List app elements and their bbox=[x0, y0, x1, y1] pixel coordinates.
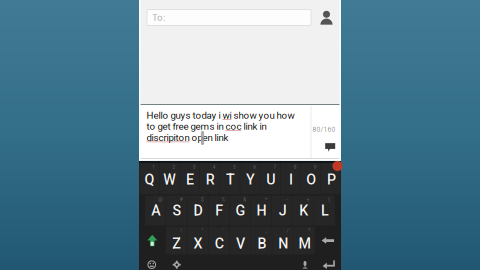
staticText: & bbox=[243, 197, 246, 202]
button[interactable]: Voice input bbox=[294, 256, 316, 270]
staticText: L bbox=[321, 202, 329, 219]
staticText: S bbox=[172, 202, 181, 219]
staticText: J bbox=[279, 202, 287, 219]
staticText: ? bbox=[308, 228, 310, 233]
staticText: ' bbox=[223, 228, 224, 233]
staticText: N bbox=[278, 235, 288, 252]
staticText: D bbox=[194, 202, 203, 219]
staticText: P bbox=[327, 171, 336, 188]
button[interactable]: Delete bbox=[315, 226, 341, 255]
button[interactable]: 7 bbox=[260, 162, 280, 194]
staticText: C bbox=[215, 235, 224, 252]
button[interactable]: 6 bbox=[240, 162, 260, 194]
staticText: Q bbox=[145, 171, 155, 188]
staticText: G bbox=[235, 202, 245, 219]
button[interactable]: ! bbox=[165, 226, 187, 255]
button[interactable]: @ bbox=[145, 195, 166, 226]
button[interactable]: 0 bbox=[321, 162, 341, 194]
button[interactable]: + bbox=[293, 195, 314, 226]
button[interactable]: Send message bbox=[325, 143, 335, 152]
staticText: X bbox=[193, 235, 202, 252]
button[interactable]: 4 bbox=[200, 162, 220, 194]
staticText: A bbox=[151, 202, 160, 219]
staticText: T bbox=[226, 171, 235, 188]
button[interactable]: Emoji bbox=[139, 256, 164, 270]
button[interactable]: To: bbox=[147, 9, 311, 25]
button[interactable]: 9 bbox=[301, 162, 321, 194]
staticText: ( bbox=[328, 197, 330, 202]
staticText: B bbox=[257, 235, 266, 252]
staticText: " bbox=[201, 228, 203, 233]
staticText: U bbox=[266, 171, 275, 188]
staticText: 2 bbox=[172, 164, 175, 170]
button[interactable]: Choose contact bbox=[320, 10, 333, 25]
button[interactable]: 5 bbox=[220, 162, 240, 194]
staticText: - bbox=[286, 197, 287, 202]
staticText: / bbox=[287, 228, 289, 233]
button[interactable]: * bbox=[250, 195, 271, 226]
staticText: M bbox=[299, 235, 311, 252]
staticText: R bbox=[206, 171, 215, 188]
staticText: ; bbox=[266, 228, 267, 233]
staticText: $ bbox=[201, 197, 204, 202]
staticText: 7 bbox=[273, 164, 276, 170]
button[interactable]: ( bbox=[314, 195, 335, 226]
staticText: O bbox=[306, 171, 316, 188]
staticText: to get free gems in coc link in bbox=[146, 121, 266, 132]
staticText: 8 bbox=[294, 164, 297, 170]
staticText: F bbox=[215, 202, 223, 219]
button[interactable]: $ bbox=[187, 195, 208, 226]
button[interactable]: Shift bbox=[139, 226, 165, 255]
button[interactable]: / bbox=[272, 226, 293, 255]
staticText: 3 bbox=[193, 164, 196, 170]
button[interactable]: ' bbox=[208, 226, 229, 255]
staticText: To: bbox=[152, 12, 165, 23]
staticText: ! bbox=[181, 228, 182, 233]
staticText: * bbox=[265, 197, 267, 202]
staticText: 1 bbox=[152, 164, 155, 170]
staticText: Y bbox=[246, 171, 255, 188]
staticText: K bbox=[299, 202, 308, 219]
button[interactable]: Keyboard settings bbox=[164, 256, 189, 270]
staticText: 6 bbox=[253, 164, 256, 170]
staticText: 5 bbox=[233, 164, 236, 170]
button[interactable]: ; bbox=[251, 226, 272, 255]
staticText: 80/160 bbox=[312, 125, 335, 133]
staticText: @ bbox=[158, 197, 162, 202]
staticText: : bbox=[244, 228, 245, 233]
staticText: E bbox=[186, 171, 194, 188]
button[interactable]: # bbox=[166, 195, 187, 226]
button[interactable]: 8 bbox=[280, 162, 301, 194]
button[interactable]: Return bbox=[316, 256, 341, 270]
staticText: I bbox=[289, 171, 293, 188]
staticText: % bbox=[222, 197, 226, 202]
staticText: V bbox=[236, 235, 245, 252]
staticText: 9 bbox=[314, 164, 317, 170]
button[interactable]: & bbox=[229, 195, 250, 226]
button[interactable]: % bbox=[208, 195, 229, 226]
staticText: Hello guys today i wi show you how bbox=[146, 110, 294, 121]
staticText: 4 bbox=[213, 164, 216, 170]
button[interactable]: - bbox=[272, 195, 293, 226]
staticText: + bbox=[307, 197, 310, 202]
staticText: # bbox=[180, 197, 183, 202]
button[interactable]: 1 bbox=[139, 162, 159, 194]
button[interactable]: " bbox=[187, 226, 208, 255]
button[interactable]: 2 bbox=[159, 162, 179, 194]
staticText: discripiton open link bbox=[146, 132, 228, 143]
staticText: Z bbox=[172, 235, 181, 252]
button[interactable]: 3 bbox=[179, 162, 200, 194]
button[interactable]: : bbox=[229, 226, 251, 255]
staticText: W bbox=[163, 171, 176, 188]
button[interactable]: ? bbox=[293, 226, 315, 255]
staticText: H bbox=[256, 202, 266, 219]
